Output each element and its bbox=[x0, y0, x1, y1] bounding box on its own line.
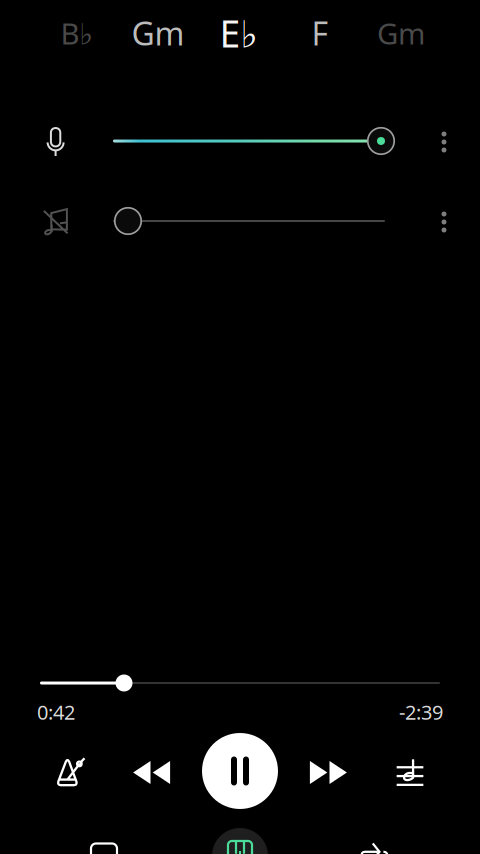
button[interactable]: Microphone options bbox=[424, 120, 464, 164]
staticText: F bbox=[311, 12, 328, 54]
button[interactable]: Metronome bbox=[44, 745, 98, 799]
button[interactable]: Rewind bbox=[125, 745, 179, 799]
button[interactable]: Keyboard bbox=[198, 829, 282, 854]
button[interactable]: Lyrics bbox=[62, 831, 146, 854]
staticText: 0:42 bbox=[37, 699, 75, 725]
button[interactable]: Microphone volume bbox=[33, 118, 79, 164]
button[interactable]: Sheet music bbox=[383, 745, 437, 799]
staticText: Gm bbox=[377, 13, 425, 52]
button[interactable]: Accompaniment volume, muted bbox=[33, 199, 79, 245]
staticText: Gm bbox=[131, 12, 184, 54]
staticText: B♭ bbox=[60, 13, 93, 52]
staticText: -2:39 bbox=[399, 699, 443, 725]
button[interactable]: Fast forward bbox=[301, 745, 355, 799]
staticText: E♭ bbox=[219, 8, 258, 58]
button[interactable]: Loop section bbox=[333, 831, 417, 854]
button[interactable]: Accompaniment options bbox=[424, 200, 464, 244]
button[interactable]: Pause bbox=[201, 732, 279, 810]
